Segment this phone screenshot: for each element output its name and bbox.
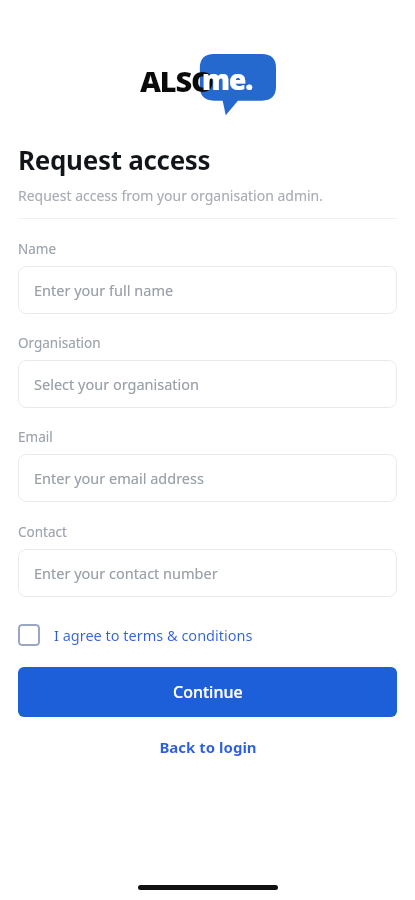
staticText: Back to login [159,737,257,757]
staticText: I agree to terms & conditions [54,625,253,645]
button[interactable]: Enter your full name [18,266,397,314]
staticText: Enter your full name [34,280,174,300]
staticText: Request access from your organisation ad… [18,186,324,205]
staticText: Select your organisation [34,374,200,394]
button[interactable]: Back to login [143,729,273,765]
staticText: Email [18,428,53,446]
staticText: Name [18,240,57,258]
staticText: Contact [18,523,67,541]
staticText: Enter your contact number [34,563,218,583]
staticText: Request access [18,142,211,177]
staticText: Continue [173,681,243,703]
staticText: Organisation [18,334,101,352]
button[interactable]: Select your organisation [18,360,397,408]
button[interactable]: Enter your contact number [18,549,397,597]
staticText: me. [202,60,253,98]
button[interactable]: Enter your email address [18,454,397,502]
button[interactable]: Continue [18,667,397,717]
staticText: Enter your email address [34,468,204,488]
other: ALSOme logo [140,52,276,116]
staticText: ALSO [140,61,213,100]
button[interactable]: I agree to terms & conditions [18,622,253,648]
